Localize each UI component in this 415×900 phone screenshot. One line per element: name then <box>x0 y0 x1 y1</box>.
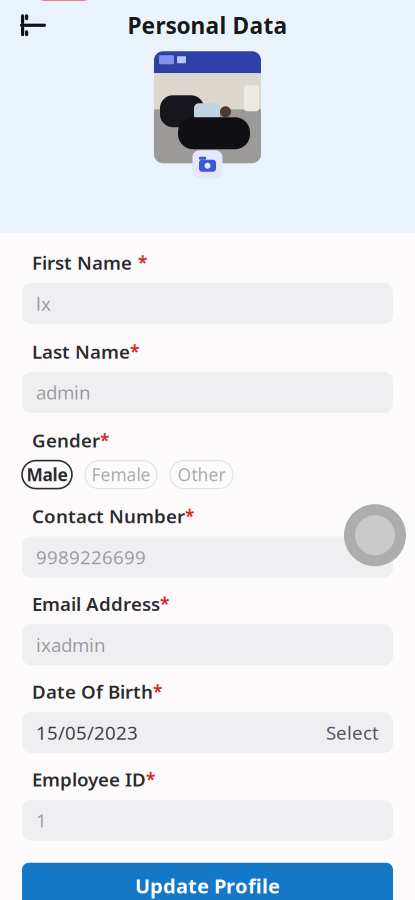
staticText: Male <box>26 463 67 486</box>
staticText: Other <box>177 463 225 486</box>
staticText: First Name <box>32 250 132 275</box>
staticText: * <box>146 768 155 791</box>
button[interactable]: 15/05/2023 <box>22 712 393 753</box>
staticText: * <box>185 504 194 527</box>
staticText: Personal Data <box>127 10 287 40</box>
staticText: lx <box>36 291 51 316</box>
button[interactable]: Update Profile <box>22 863 393 900</box>
staticText: Employee ID <box>32 767 146 792</box>
staticText: Select <box>326 720 379 745</box>
staticText: * <box>160 592 169 615</box>
staticText: * <box>130 340 139 363</box>
button[interactable]: 9989226699 <box>22 536 393 577</box>
staticText: Gender <box>32 428 100 453</box>
button[interactable]: Male <box>22 461 72 489</box>
staticText: Update Profile <box>135 872 280 899</box>
button[interactable]: lx <box>22 283 393 324</box>
staticText: Female <box>91 463 150 486</box>
button[interactable]: admin <box>22 372 393 413</box>
staticText: Date Of Birth <box>32 679 153 704</box>
button[interactable]: ixadmin <box>22 624 393 665</box>
staticText: 15/05/2023 <box>36 720 138 745</box>
staticText: Email Address <box>32 591 160 616</box>
staticText: 1 <box>36 808 47 833</box>
staticText: 9989226699 <box>36 544 146 569</box>
button[interactable]: Back <box>10 3 56 47</box>
staticText: admin <box>36 380 91 405</box>
staticText: * <box>153 680 162 703</box>
button[interactable]: Other <box>170 461 233 489</box>
staticText: * <box>100 429 109 452</box>
staticText: ixadmin <box>36 632 106 657</box>
staticText: Contact Number <box>32 504 185 528</box>
button[interactable]: Change profile photo <box>191 149 223 179</box>
button[interactable]: 1 <box>22 800 393 841</box>
button[interactable]: Female <box>85 461 157 489</box>
staticText: Last Name <box>32 339 130 364</box>
staticText: * <box>138 251 147 274</box>
